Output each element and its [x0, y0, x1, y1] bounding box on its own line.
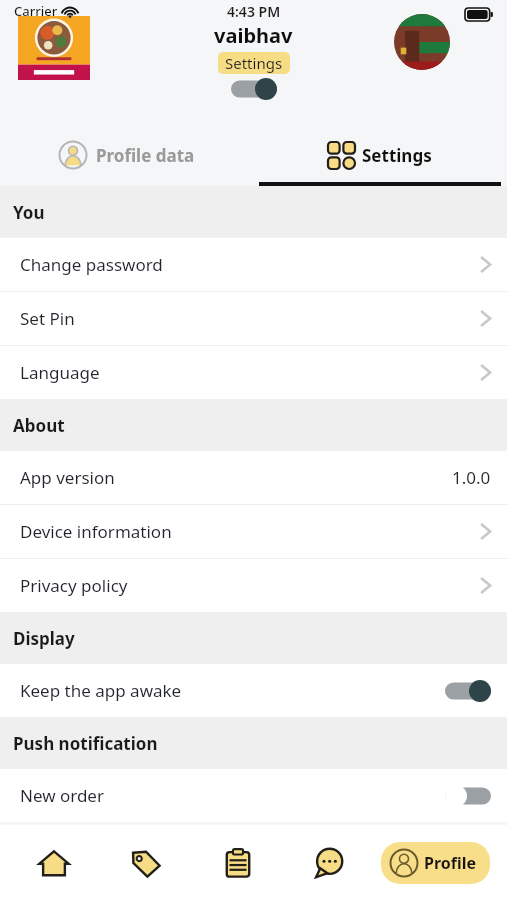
staticText: Profile data: [96, 144, 195, 167]
staticText: Push notification: [13, 732, 158, 755]
staticText: Privacy policy: [20, 574, 128, 597]
button[interactable]: Profile: [381, 842, 490, 884]
staticText: Language: [20, 361, 100, 384]
staticText: Settings: [362, 144, 432, 167]
button[interactable]: Chat: [283, 825, 374, 900]
staticText: Display: [13, 627, 75, 650]
staticText: Change password: [20, 253, 163, 276]
staticText: You: [13, 201, 45, 224]
button[interactable]: Device information: [0, 505, 507, 558]
staticText: New order: [20, 784, 104, 807]
staticText: 4:43 PM: [227, 2, 281, 21]
button[interactable]: New order: [0, 769, 507, 822]
button[interactable]: Change password: [0, 238, 507, 291]
button[interactable]: Profile data: [0, 124, 253, 186]
button[interactable]: Privacy policy: [0, 559, 507, 612]
staticText: Set Pin: [20, 307, 75, 330]
staticText: Profile: [424, 852, 477, 874]
staticText: Keep the app awake: [20, 679, 182, 702]
button[interactable]: [18, 16, 90, 80]
button[interactable]: Store photo: [394, 14, 450, 70]
button[interactable]: Availability toggle: [231, 78, 277, 100]
button[interactable]: Keep the app awake: [0, 664, 507, 717]
staticText: Device information: [20, 520, 172, 543]
staticText: App version: [20, 466, 115, 489]
button[interactable]: Home: [8, 825, 100, 900]
button[interactable]: Orders: [192, 825, 283, 900]
staticText: vaibhav: [214, 22, 293, 49]
button[interactable]: Settings: [218, 52, 290, 74]
button[interactable]: Offers: [100, 825, 192, 900]
staticText: Settings: [225, 53, 283, 73]
button[interactable]: Settings: [253, 124, 507, 186]
staticText: 1.0.0: [452, 466, 491, 489]
staticText: Carrier: [14, 2, 58, 20]
button[interactable]: Set Pin: [0, 292, 507, 345]
button[interactable]: Language: [0, 346, 507, 399]
button[interactable]: App version: [0, 451, 507, 504]
staticText: About: [13, 414, 65, 437]
